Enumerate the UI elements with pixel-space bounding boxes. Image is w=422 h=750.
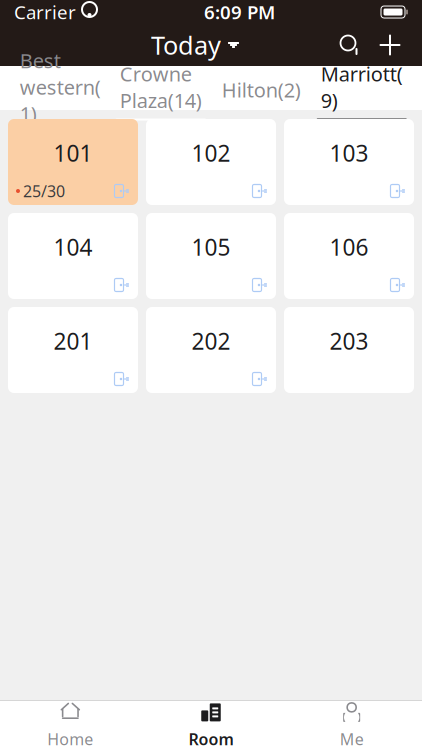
staticText: Crowne Plaza(14) xyxy=(120,60,202,113)
staticText: Best western(1) xyxy=(20,47,101,127)
button[interactable]: Crowne Plaza(14) xyxy=(110,66,211,110)
staticText: 103 xyxy=(329,138,368,168)
staticText: 106 xyxy=(329,232,368,262)
staticText: Room xyxy=(188,728,233,750)
button[interactable]: 203 xyxy=(284,307,414,393)
button[interactable]: Marriott(9) xyxy=(311,66,412,110)
staticText: 101 xyxy=(53,138,92,168)
button[interactable]: Hilton(2) xyxy=(211,66,311,110)
button[interactable]: 101 xyxy=(8,119,138,205)
staticText: Marriott(9) xyxy=(321,60,403,113)
button[interactable]: 103 xyxy=(284,119,414,205)
button[interactable]: 104 xyxy=(8,213,138,299)
staticText: Hilton(2) xyxy=(222,76,301,103)
button[interactable]: Room xyxy=(141,701,281,750)
staticText: Me xyxy=(340,728,364,750)
staticText: 203 xyxy=(329,326,368,356)
staticText: Home xyxy=(47,728,93,750)
button[interactable]: 202 xyxy=(146,307,276,393)
staticText: Carrier xyxy=(14,0,76,24)
button[interactable]: 102 xyxy=(146,119,276,205)
staticText: Today xyxy=(151,28,221,62)
staticText: 201 xyxy=(53,326,92,356)
staticText: 104 xyxy=(53,232,92,262)
button[interactable]: Home xyxy=(0,701,141,750)
staticText: 105 xyxy=(191,232,230,262)
button[interactable]: Today xyxy=(145,24,245,66)
button[interactable]: Me xyxy=(281,701,422,750)
staticText: 25/30 xyxy=(23,180,65,202)
button[interactable]: 105 xyxy=(146,213,276,299)
button[interactable]: Search xyxy=(330,25,370,65)
button[interactable]: Best western(1) xyxy=(10,66,110,110)
button[interactable]: 106 xyxy=(284,213,414,299)
button[interactable]: 201 xyxy=(8,307,138,393)
staticText: 6:09 PM xyxy=(204,0,275,24)
button[interactable]: Add xyxy=(370,25,410,65)
staticText: 102 xyxy=(191,138,230,168)
staticText: 202 xyxy=(191,326,230,356)
